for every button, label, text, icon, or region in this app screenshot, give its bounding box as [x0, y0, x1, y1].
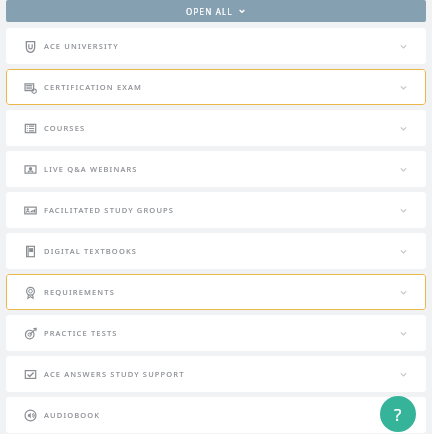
button[interactable]: ACE UNIVERSITY — [6, 28, 426, 64]
staticText: PRACTICE TESTS — [44, 328, 118, 338]
button[interactable]: OPEN ALL — [6, 0, 426, 22]
button[interactable]: COURSES — [6, 110, 426, 146]
button[interactable]: CERTIFICATION EXAM — [6, 69, 426, 105]
button[interactable]: ACE ANSWERS STUDY SUPPORT — [6, 356, 426, 392]
staticText: OPEN ALL — [186, 6, 233, 17]
staticText: CERTIFICATION EXAM — [44, 82, 143, 92]
button[interactable]: Help — [380, 396, 416, 432]
button[interactable]: REQUIREMENTS — [6, 274, 426, 310]
button[interactable]: LIVE Q&A WEBINARS — [6, 151, 426, 187]
staticText: LIVE Q&A WEBINARS — [44, 164, 138, 174]
button[interactable]: DIGITAL TEXTBOOKS — [6, 233, 426, 269]
staticText: DIGITAL TEXTBOOKS — [44, 246, 138, 256]
staticText: ? — [394, 403, 402, 426]
button[interactable]: PRACTICE TESTS — [6, 315, 426, 351]
staticText: ACE ANSWERS STUDY SUPPORT — [44, 369, 185, 379]
button[interactable]: AUDIOBOOK — [6, 397, 426, 433]
staticText: AUDIOBOOK — [44, 410, 101, 420]
staticText: FACILITATED STUDY GROUPS — [44, 205, 175, 215]
staticText: ACE UNIVERSITY — [44, 41, 119, 51]
button[interactable]: FACILITATED STUDY GROUPS — [6, 192, 426, 228]
staticText: REQUIREMENTS — [44, 287, 115, 297]
staticText: COURSES — [44, 123, 86, 133]
